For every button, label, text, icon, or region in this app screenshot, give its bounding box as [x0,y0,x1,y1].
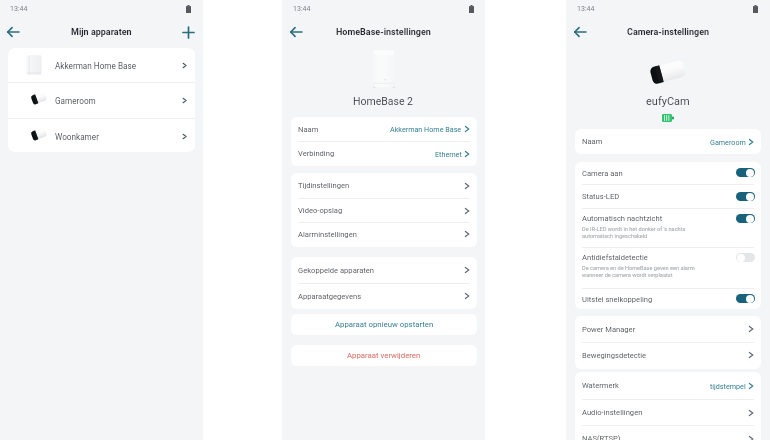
staticText: Video-opslag [298,206,343,215]
button[interactable]: Back [284,20,308,44]
button[interactable]: Naam [291,117,477,141]
staticText: De camera en de HomeBase geven een alarm… [582,265,695,279]
button[interactable]: Antidiefstaldetectie [575,247,761,287]
button[interactable]: Power Manager [575,316,761,342]
staticText: Gameroom [55,96,96,106]
staticText: Apparaat opnieuw opstarten [335,320,434,329]
button[interactable]: Apparaat verwijderen [291,345,477,366]
button[interactable]: Verbinding [291,141,477,166]
staticText: Uitstel snelkoppeling [582,295,653,304]
staticText: Apparaat verwijderen [347,351,421,360]
staticText: De IR-LED wordt in het donker of 's nach… [582,226,686,240]
button[interactable]: On [736,192,755,201]
button[interactable]: Woonkamer [8,119,195,152]
staticText: HomeBase-instellingen [336,27,431,38]
staticText: tijdstempel [710,382,746,390]
button[interactable]: Akkerman Home Base [8,48,195,83]
staticText: Gekoppelde apparaten [298,266,375,275]
button[interactable]: Automatisch nachtzicht [575,208,761,247]
staticText: HomeBase 2 [353,95,414,107]
staticText: Verbinding [298,149,335,158]
button[interactable]: Off [736,253,755,262]
staticText: Antidiefstaldetectie [582,253,648,262]
staticText: 13:44 [293,5,311,13]
staticText: 13:44 [577,5,595,13]
staticText: eufyCam [646,95,690,108]
staticText: Bewegingsdetectie [582,351,647,360]
staticText: Power Manager [582,325,636,334]
button[interactable]: Video-opslag [291,198,477,223]
button[interactable]: On [736,214,755,223]
staticText: Akkerman Home Base [55,61,137,71]
button[interactable]: Apparaatgegevens [291,283,477,309]
button[interactable]: On [736,168,755,177]
staticText: Alarminstellingen [298,230,357,239]
staticText: Status-LED [582,192,620,201]
button[interactable]: Watermerk [575,372,761,399]
button[interactable]: Back [1,20,25,44]
staticText: Naam [582,137,603,146]
staticText: NAS(RTSP) [582,434,621,440]
staticText: Camera aan [582,169,623,178]
staticText: Ethernet [435,150,462,158]
button[interactable]: Gameroom [8,83,195,118]
button[interactable]: Camera aan [575,162,761,184]
button[interactable]: Alarminstellingen [291,222,477,246]
button[interactable]: Add device [176,20,200,44]
button[interactable]: Apparaat opnieuw opstarten [291,314,477,335]
button[interactable]: Back [568,20,592,44]
staticText: Mijn apparaten [71,27,132,38]
staticText: Apparaatgegevens [298,292,362,301]
staticText: Naam [298,125,319,134]
staticText: Akkerman Home Base [390,125,462,133]
staticText: Gameroom [710,138,746,146]
staticText: Watermerk [582,381,619,390]
button[interactable]: On [736,294,755,303]
staticText: Woonkamer [55,132,99,142]
button[interactable]: Audio-instellingen [575,399,761,426]
button[interactable]: Uitstel snelkoppeling [575,288,761,309]
button[interactable]: NAS(RTSP) [575,425,761,440]
button[interactable]: Gekoppelde apparaten [291,257,477,283]
staticText: Tijdinstellingen [298,181,350,190]
staticText: 13:44 [10,5,28,13]
button[interactable]: Tijdinstellingen [291,173,477,198]
staticText: Automatisch nachtzicht [582,214,663,223]
button[interactable]: Status-LED [575,184,761,209]
staticText: Camera-instellingen [627,27,710,38]
staticText: Audio-instellingen [582,408,643,417]
button[interactable]: Naam [575,129,761,154]
button[interactable]: Bewegingsdetectie [575,342,761,368]
